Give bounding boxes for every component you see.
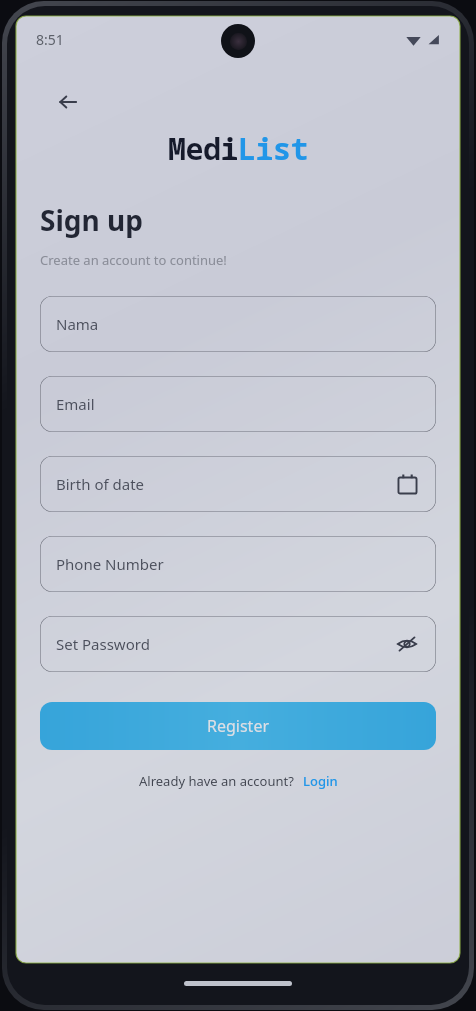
button[interactable]: Nama: [40, 296, 436, 352]
button[interactable]: Phone Number: [40, 536, 436, 592]
staticText: Medi: [168, 128, 238, 169]
staticText: Sign up: [40, 201, 143, 239]
staticText: Email: [56, 394, 95, 414]
button[interactable]: Email: [40, 376, 436, 432]
staticText: Set Password: [56, 634, 150, 654]
staticText: Create an account to continue!: [40, 251, 227, 269]
button[interactable]: Login: [303, 772, 338, 790]
staticText: Login: [303, 772, 338, 790]
staticText: Phone Number: [56, 554, 164, 574]
staticText: List: [238, 128, 308, 169]
staticText: Already have an account?: [139, 772, 294, 790]
staticText: Nama: [56, 314, 99, 334]
button[interactable]: Set Password: [40, 616, 436, 672]
button[interactable]: Back: [46, 80, 90, 124]
other: Toggle password visibility: [394, 631, 420, 657]
staticText: Birth of date: [56, 474, 145, 494]
button[interactable]: Register: [40, 702, 436, 750]
staticText: 8:51: [36, 30, 64, 49]
button[interactable]: Birth of date: [40, 456, 436, 512]
staticText: Register: [207, 715, 270, 737]
other: Pick date: [394, 471, 420, 497]
